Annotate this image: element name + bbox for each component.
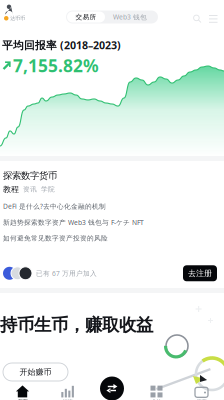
button[interactable]: 行情 — [45, 383, 90, 400]
button[interactable]: 学院 — [41, 185, 55, 193]
staticText: 如何避免常见数字资产投资的风险 — [3, 234, 108, 242]
button[interactable]: 新趋势探索数字资产 Web3 钱包与 F-ケチ NFT — [3, 214, 217, 230]
button[interactable]: Swap — [100, 376, 124, 400]
staticText: 学院 — [41, 185, 55, 193]
staticText: 行情 — [62, 398, 72, 400]
button[interactable]: 如何避免常见数字资产投资的风险 — [3, 230, 217, 246]
staticText: 持币生币，赚取收益 — [0, 314, 153, 336]
button[interactable]: 资讯 — [23, 185, 37, 193]
button[interactable]: 教程 — [3, 184, 19, 194]
staticText: 7,155.82% — [13, 54, 99, 77]
staticText: Web3 钱包 — [113, 13, 147, 21]
button[interactable]: 合约 — [134, 383, 179, 400]
staticText: 资讯 — [23, 185, 37, 193]
staticText: DeFi 是什么?去中心化金融的机制 — [3, 202, 106, 211]
staticText: 平均回报率 (2018–2023) — [2, 38, 121, 52]
staticText: 教程 — [3, 184, 19, 194]
staticText: 已有 67 万用户加入 — [36, 269, 97, 278]
staticText: 首页 — [17, 398, 27, 400]
staticText: 交易所 — [75, 13, 96, 21]
button[interactable]: Web3 钱包 — [105, 11, 155, 22]
button[interactable]: 交易所 — [67, 11, 105, 22]
button[interactable]: Account — [0, 4, 38, 26]
staticText: 去注册 — [188, 268, 212, 278]
staticText: 开始赚币 — [19, 367, 51, 377]
staticText: 达币币 — [10, 15, 25, 22]
staticText: 合约 — [151, 398, 161, 400]
button[interactable]: 资产 — [179, 383, 224, 400]
button[interactable]: 去注册 — [183, 265, 217, 281]
button[interactable]: Menu — [209, 14, 218, 23]
button[interactable]: 首页 — [0, 383, 45, 400]
button[interactable]: Search — [193, 14, 202, 23]
staticText: 新趋势探索数字资产 Web3 钱包与 F-ケチ NFT — [3, 218, 144, 227]
staticText: 探索数字货币 — [3, 170, 57, 181]
staticText: 资产 — [196, 398, 206, 400]
button[interactable]: DeFi 是什么?去中心化金融的机制 — [3, 198, 217, 214]
button[interactable]: 开始赚币 — [3, 363, 68, 381]
